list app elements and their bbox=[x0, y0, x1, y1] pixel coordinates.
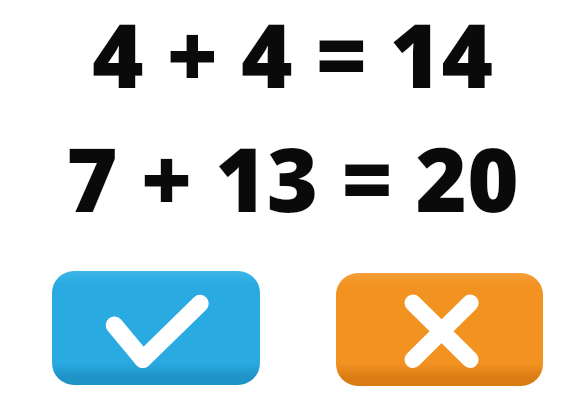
button[interactable]: Correct bbox=[52, 271, 260, 385]
staticText: 4 + 4 = 14 bbox=[92, 0, 493, 90]
staticText: 7 + 13 = 20 bbox=[66, 118, 519, 214]
button[interactable]: Wrong bbox=[336, 273, 543, 386]
